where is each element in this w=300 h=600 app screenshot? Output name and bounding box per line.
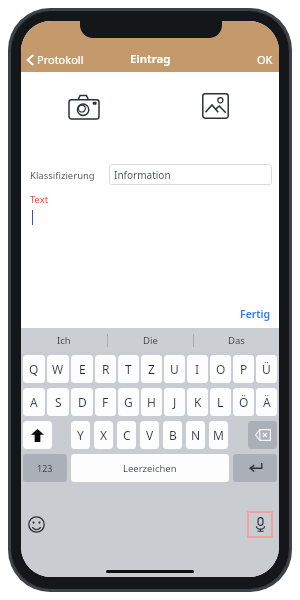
staticText: M	[213, 427, 224, 443]
staticText: Ü	[262, 361, 271, 377]
button[interactable]: Z	[141, 355, 162, 383]
staticText: Ich	[57, 334, 71, 347]
button[interactable]: Fertig	[232, 303, 279, 325]
button[interactable]: T	[118, 355, 139, 383]
staticText: Ä	[263, 394, 271, 410]
staticText: U	[170, 361, 179, 377]
button[interactable]: Eingabe	[233, 454, 277, 482]
staticText: R	[102, 361, 110, 377]
button[interactable]: Protokoll	[21, 49, 89, 70]
staticText: Leerzeichen	[123, 462, 177, 475]
staticText: B	[169, 427, 177, 443]
staticText: L	[217, 394, 224, 410]
staticText: Text	[30, 193, 49, 206]
button[interactable]: G	[118, 388, 139, 416]
button[interactable]: V	[140, 421, 159, 449]
staticText: 123	[37, 462, 53, 474]
button[interactable]: Bild auswählen	[202, 93, 229, 119]
button[interactable]: Y	[71, 421, 90, 449]
staticText: Klassifizierung	[30, 169, 95, 182]
button[interactable]: Information	[109, 164, 272, 185]
button[interactable]: Diktieren	[247, 511, 273, 538]
button[interactable]: H	[141, 388, 162, 416]
button[interactable]: Ö	[233, 388, 254, 416]
staticText: Q	[29, 361, 39, 377]
button[interactable]: N	[186, 421, 205, 449]
button[interactable]: D	[71, 388, 93, 416]
button[interactable]: Löschen	[248, 421, 277, 449]
staticText: J	[173, 394, 177, 410]
staticText: Eintrag	[130, 51, 171, 67]
button[interactable]: Das	[194, 328, 279, 352]
button[interactable]: Q	[23, 355, 45, 383]
button[interactable]: 123	[23, 454, 67, 482]
staticText: I	[195, 361, 200, 377]
staticText: H	[147, 394, 156, 410]
button[interactable]: M	[209, 421, 228, 449]
button[interactable]: L	[210, 388, 231, 416]
staticText: D	[78, 394, 87, 410]
button[interactable]: I	[187, 355, 208, 383]
button[interactable]: E	[71, 355, 93, 383]
button[interactable]: O	[210, 355, 231, 383]
button[interactable]: F	[95, 388, 116, 416]
staticText: F	[102, 394, 109, 410]
button[interactable]: OK	[251, 48, 279, 71]
button[interactable]: S	[47, 388, 69, 416]
staticText: C	[123, 427, 131, 443]
staticText: Y	[77, 427, 84, 443]
staticText: T	[125, 361, 132, 377]
button[interactable]: Kamera	[69, 93, 99, 119]
staticText: A	[30, 394, 38, 410]
button[interactable]: U	[164, 355, 185, 383]
staticText: S	[55, 394, 62, 410]
staticText: X	[100, 427, 108, 443]
staticText: W	[52, 361, 64, 377]
staticText: K	[194, 394, 202, 410]
button[interactable]: Umschalttaste	[23, 421, 52, 449]
button[interactable]: Ich	[21, 328, 107, 352]
button[interactable]: K	[187, 388, 208, 416]
staticText: Fertig	[240, 307, 271, 321]
staticText: Ö	[239, 394, 249, 410]
staticText: O	[216, 361, 226, 377]
staticText: N	[191, 427, 201, 443]
staticText: Protokoll	[37, 52, 84, 67]
button[interactable]: P	[233, 355, 254, 383]
staticText: P	[240, 361, 248, 377]
button[interactable]: J	[164, 388, 185, 416]
staticText: V	[146, 427, 154, 443]
button[interactable]: Die	[108, 328, 193, 352]
button[interactable]: W	[47, 355, 69, 383]
staticText: E	[79, 361, 86, 377]
button[interactable]: Leerzeichen	[71, 454, 229, 482]
button[interactable]: Ä	[256, 388, 277, 416]
button[interactable]: Emoji	[28, 516, 45, 533]
button[interactable]: Ü	[256, 355, 277, 383]
staticText: Die	[143, 334, 158, 347]
button[interactable]: B	[163, 421, 182, 449]
staticText: G	[124, 394, 133, 410]
button[interactable]: A	[23, 388, 45, 416]
button[interactable]: R	[95, 355, 116, 383]
staticText: OK	[257, 52, 273, 67]
staticText: Z	[148, 361, 155, 377]
staticText: Das	[228, 334, 245, 347]
button[interactable]: C	[117, 421, 136, 449]
staticText: Information	[114, 168, 171, 182]
button[interactable]: X	[94, 421, 113, 449]
